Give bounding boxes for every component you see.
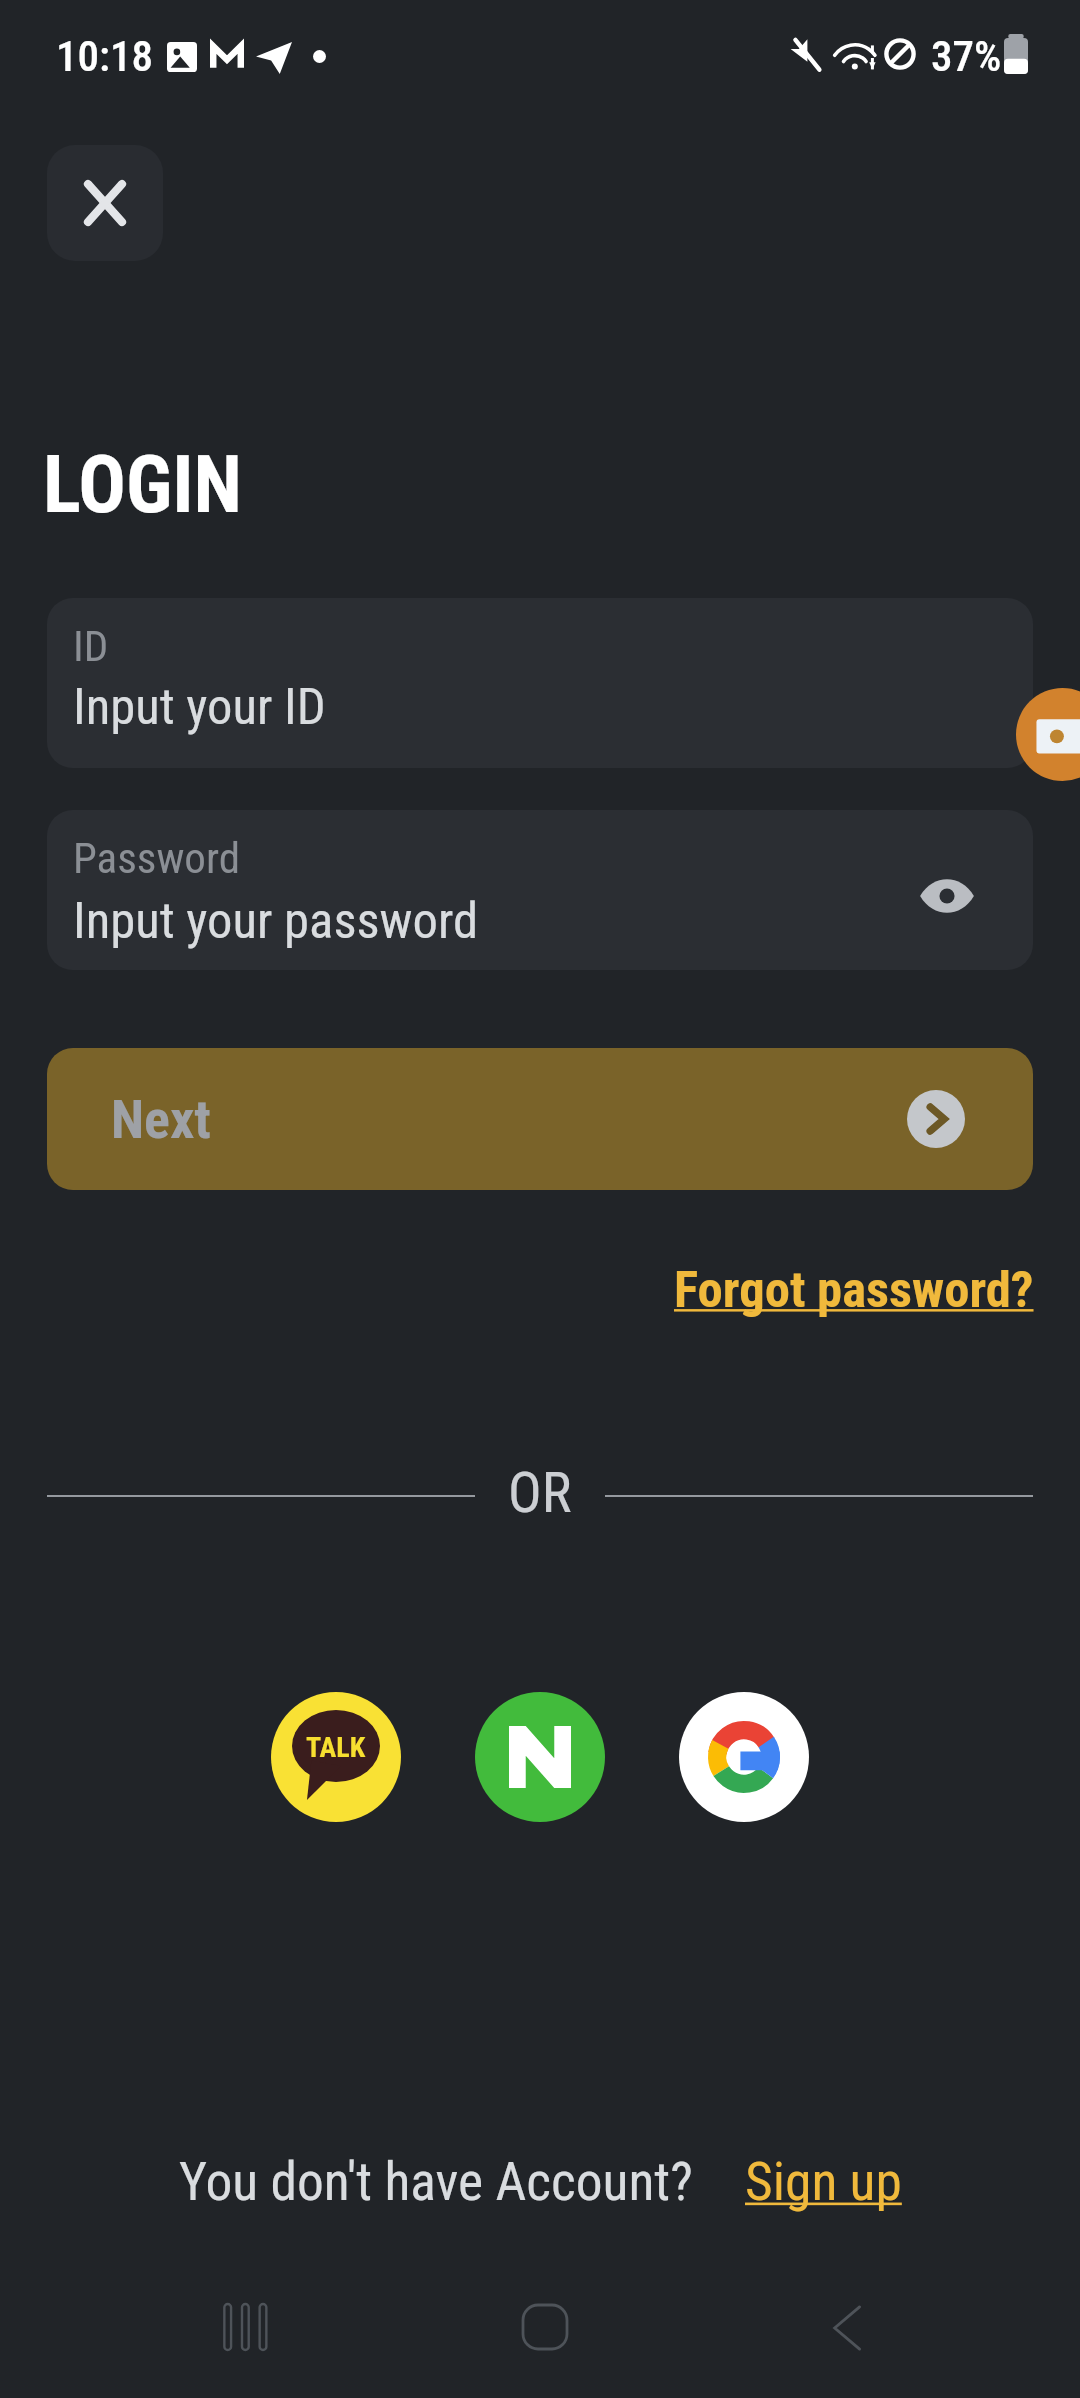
button[interactable]: Login with Google xyxy=(679,1692,809,1822)
staticText: Input your password xyxy=(73,891,479,950)
button[interactable]: Back xyxy=(791,2272,903,2384)
button[interactable]: ID xyxy=(47,598,1033,768)
button[interactable]: Screen recorder xyxy=(1016,688,1080,781)
staticText: Next xyxy=(111,1088,211,1151)
staticText: You don't have Account? xyxy=(179,2150,693,2213)
staticText: LOGIN xyxy=(43,439,242,532)
button[interactable]: Sign up xyxy=(745,2150,902,2213)
button[interactable]: Login with Naver xyxy=(475,1692,605,1822)
staticText: TALK xyxy=(306,1731,366,1764)
button[interactable]: Home xyxy=(489,2271,601,2383)
button[interactable]: Password xyxy=(47,810,1033,970)
button[interactable]: Recents xyxy=(186,2271,298,2383)
staticText: 10:18 xyxy=(56,31,153,81)
button[interactable]: Forgot password? xyxy=(674,1260,1034,1319)
button[interactable]: Next xyxy=(47,1048,1033,1190)
staticText: Input your ID xyxy=(73,677,326,736)
staticText: 37% xyxy=(931,31,1002,81)
staticText: OR xyxy=(508,1460,572,1526)
staticText: Password xyxy=(73,833,240,883)
staticText: ID xyxy=(73,621,109,671)
button[interactable]: Login with Kakao xyxy=(271,1692,401,1822)
button[interactable]: Close xyxy=(47,145,163,261)
